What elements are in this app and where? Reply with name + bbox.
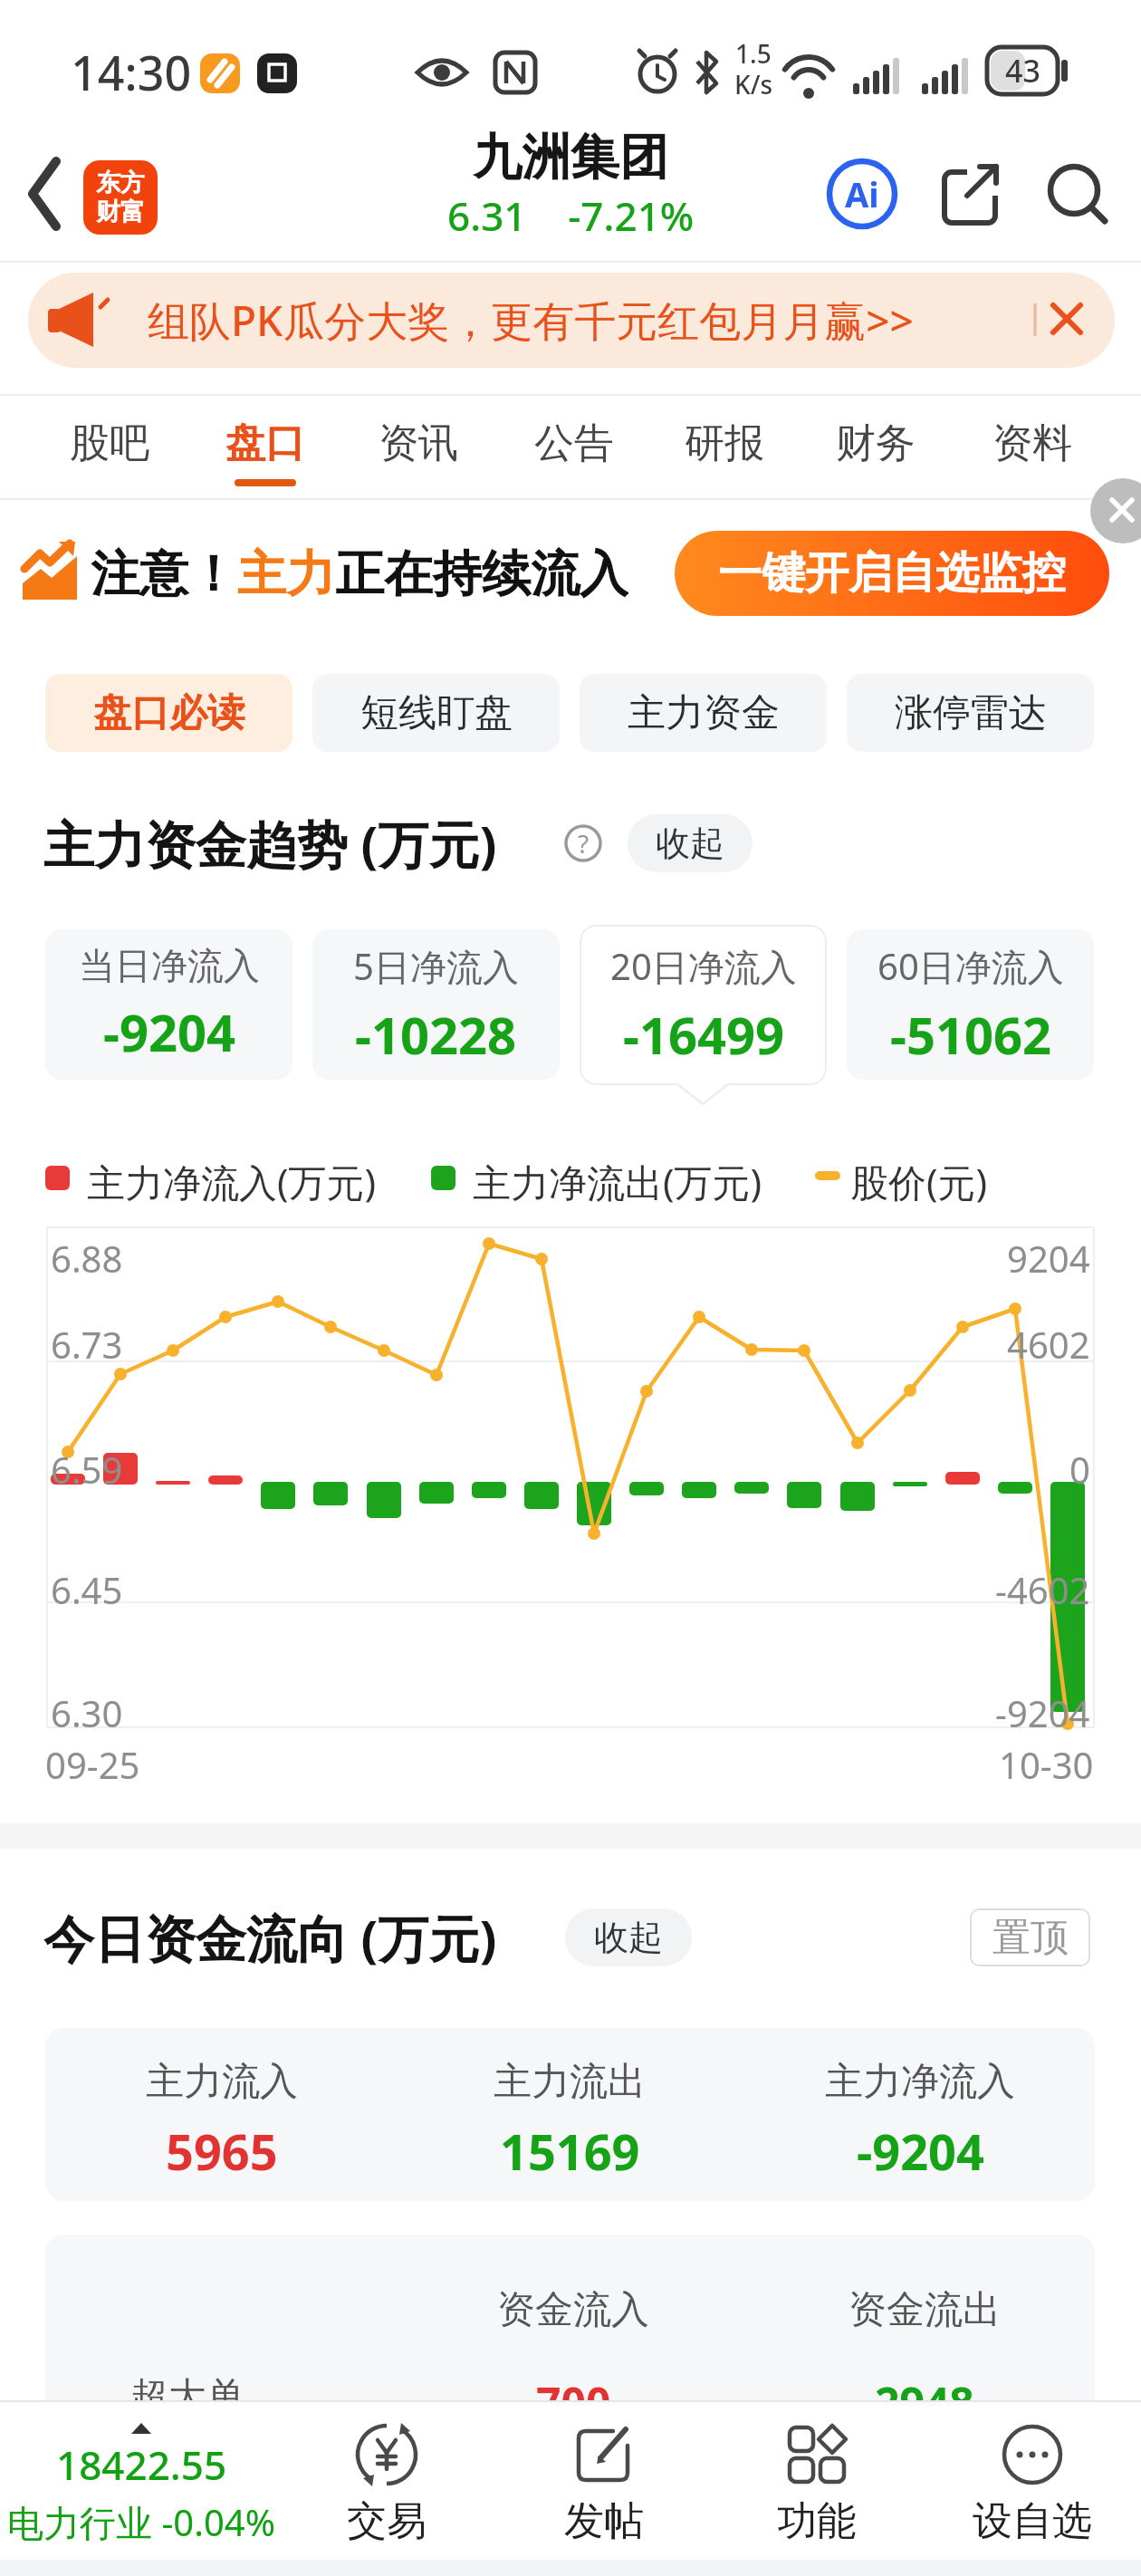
button[interactable]: 18422.55: [0, 2408, 283, 2562]
staticText: 1.5: [735, 36, 772, 71]
staticText: 6.45: [51, 1565, 123, 1609]
staticText: -4602: [995, 1565, 1090, 1609]
staticText: -16499: [623, 1000, 785, 1069]
staticText: ?: [578, 826, 590, 860]
staticText: 5965: [166, 2118, 278, 2174]
staticText: 4602: [1007, 1320, 1090, 1363]
staticText: 短线盯盘: [360, 689, 513, 737]
staticText: K/s: [734, 67, 773, 101]
staticText: 收起: [656, 822, 724, 865]
button[interactable]: 发帖: [523, 2406, 686, 2560]
staticText: 正在持续流入: [335, 543, 628, 603]
staticText: 主力净流入: [825, 2058, 1015, 2103]
staticText: 资讯: [379, 418, 458, 468]
staticText: 18422.55: [56, 2437, 227, 2492]
staticText: 主力流入: [146, 2058, 298, 2103]
button[interactable]: 研报: [661, 402, 788, 484]
button[interactable]: 资料: [969, 402, 1096, 484]
button[interactable]: [940, 163, 1003, 226]
button[interactable]: 主力资金: [580, 674, 827, 752]
button[interactable]: [1090, 484, 1141, 545]
staticText: 资金流出: [849, 2286, 1001, 2333]
staticText: 6.59: [51, 1445, 123, 1488]
staticText: 主力净流出(万元): [473, 1156, 762, 1203]
staticText: 盘口必读: [93, 689, 245, 737]
staticText: 主力资金趋势 (万元): [43, 809, 497, 874]
staticText: 6.30: [51, 1688, 123, 1732]
button[interactable]: 短线盯盘: [312, 674, 560, 752]
button[interactable]: 20日净流入: [580, 925, 827, 1085]
button[interactable]: 当日净流入: [45, 929, 292, 1080]
staticText: 设自选: [973, 2496, 1092, 2546]
staticText: 今日资金流向 (万元): [43, 1903, 497, 1968]
staticText: 主力净流入(万元): [87, 1156, 377, 1203]
button[interactable]: 60日净流入: [847, 929, 1094, 1080]
staticText: 注意！: [91, 543, 237, 603]
staticText: 超大单: [130, 2373, 244, 2420]
staticText: 700: [536, 2373, 611, 2420]
staticText: 10-30: [999, 1740, 1094, 1783]
staticText: 涨停雷达: [895, 689, 1047, 737]
staticText: 股价(元): [850, 1156, 988, 1203]
staticText: Ai: [845, 170, 879, 217]
staticText: 60日净流入: [877, 941, 1064, 991]
staticText: 15169: [500, 2118, 640, 2174]
staticText: 发帖: [564, 2496, 644, 2546]
staticText: 交易: [347, 2496, 427, 2546]
staticText: 资金流入: [497, 2286, 649, 2333]
staticText: 20日净流入: [610, 941, 797, 991]
button[interactable]: 收起: [565, 1908, 692, 1966]
button[interactable]: Ai: [826, 158, 898, 230]
staticText: 6.31 -7.21%: [447, 188, 695, 237]
button[interactable]: 5日净流入: [312, 929, 560, 1080]
button[interactable]: 财务: [812, 402, 939, 484]
button[interactable]: 置顶: [970, 1908, 1090, 1966]
button[interactable]: 盘口必读: [45, 674, 292, 752]
button[interactable]: 收起: [628, 814, 753, 872]
staticText: 43: [1005, 50, 1040, 91]
button[interactable]: 盘口: [202, 402, 329, 484]
button[interactable]: 设自选: [951, 2406, 1114, 2560]
staticText: 当日净流入: [79, 943, 260, 988]
button[interactable]: ?: [563, 823, 603, 863]
staticText: 09-25: [45, 1740, 140, 1783]
button[interactable]: [45, 2028, 1095, 2201]
button[interactable]: 组队PK瓜分大奖，更有千元红包月月赢>>: [28, 273, 1115, 368]
staticText: 主力资金: [628, 689, 780, 737]
staticText: 5日净流入: [353, 941, 519, 991]
button[interactable]: 股吧: [46, 402, 173, 484]
staticText: -51062: [890, 1000, 1052, 1069]
staticText: 0: [1069, 1445, 1090, 1488]
staticText: 公告: [534, 418, 614, 468]
staticText: 6.73: [51, 1320, 123, 1363]
staticText: 九洲集团: [473, 127, 668, 187]
staticText: -10228: [355, 1000, 517, 1069]
staticText: 2948: [875, 2373, 974, 2420]
staticText: 东方 财富: [96, 168, 145, 227]
staticText: 主力: [237, 543, 335, 603]
staticText: 资料: [992, 418, 1072, 468]
staticText: 一键开启自选监控: [718, 546, 1066, 601]
staticText: 置顶: [992, 1914, 1069, 1962]
button[interactable]: 公告: [511, 402, 638, 484]
staticText: 盘口: [225, 418, 305, 468]
staticText: 14:30: [71, 40, 192, 92]
button[interactable]: 一键开启自选监控: [675, 531, 1109, 616]
button[interactable]: 功能: [735, 2406, 898, 2560]
staticText: 收起: [594, 1916, 663, 1959]
button[interactable]: [1040, 159, 1116, 235]
staticText: 6.88: [51, 1234, 123, 1277]
button[interactable]: 涨停雷达: [847, 674, 1094, 752]
button[interactable]: 东方 财富: [83, 160, 158, 235]
staticText: -9204: [103, 997, 236, 1066]
staticText: 功能: [777, 2496, 857, 2546]
staticText: -9204: [995, 1688, 1090, 1732]
staticText: 财务: [836, 418, 916, 468]
staticText: 主力流出: [494, 2058, 646, 2103]
staticText: 股吧: [70, 418, 149, 468]
staticText: 组队PK瓜分大奖，更有千元红包月月赢>>: [148, 292, 914, 349]
button[interactable]: 交易: [305, 2406, 468, 2560]
button[interactable]: 资讯: [355, 402, 482, 484]
button[interactable]: [14, 154, 87, 234]
staticText: -9204: [857, 2118, 984, 2174]
